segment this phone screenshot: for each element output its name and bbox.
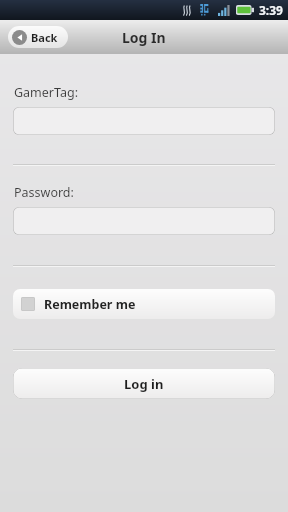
staticText: Remember me	[44, 296, 136, 313]
staticText: 3:39	[259, 2, 283, 18]
staticText: GamerTag:	[14, 84, 79, 101]
staticText: Password:	[14, 184, 74, 201]
button[interactable]: Back	[8, 26, 68, 48]
button[interactable]: Remember me	[13, 289, 275, 319]
button[interactable]	[13, 107, 275, 135]
staticText: Log In	[122, 28, 166, 47]
staticText: Back	[31, 30, 58, 45]
button[interactable]: Log in	[13, 368, 275, 399]
staticText: Log in	[124, 375, 164, 393]
button[interactable]	[13, 207, 275, 235]
